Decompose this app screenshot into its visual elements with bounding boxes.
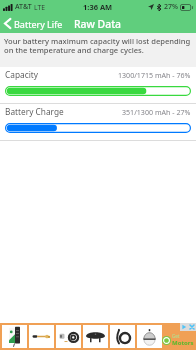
staticText: AT&T: [15, 2, 32, 12]
button[interactable]: Ad product 3: [56, 325, 81, 348]
other: Back: [4, 18, 11, 29]
staticText: Battery Life: [14, 18, 63, 30]
staticText: 1300/1715 mAh - 76%: [118, 70, 191, 80]
button[interactable]: Ad options: [180, 323, 196, 331]
button[interactable]: Ad product 1: [2, 325, 27, 348]
staticText: Get: [172, 333, 180, 339]
button[interactable]: Ad product 2: [29, 325, 54, 348]
staticText: 351/1300 mAh - 27%: [122, 107, 191, 117]
staticText: 27%: [164, 2, 178, 12]
staticText: LTE: [34, 3, 45, 12]
staticText: Battery Charge: [5, 106, 64, 117]
button[interactable]: Ad product 4: [83, 325, 108, 348]
button[interactable]: Battery Charge: [0, 104, 196, 140]
button[interactable]: Capacity: [0, 67, 196, 103]
button[interactable]: Ad product 5: [110, 325, 135, 348]
button[interactable]: Ad product 6: [137, 325, 162, 348]
staticText: 1:36 AM: [83, 2, 113, 12]
button[interactable]: Back: [0, 14, 68, 33]
staticText: Raw Data: [74, 17, 122, 31]
staticText: Your battery maximum capacity will lost …: [4, 36, 191, 55]
staticText: Motors: [172, 339, 194, 347]
staticText: Capacity: [5, 69, 39, 80]
